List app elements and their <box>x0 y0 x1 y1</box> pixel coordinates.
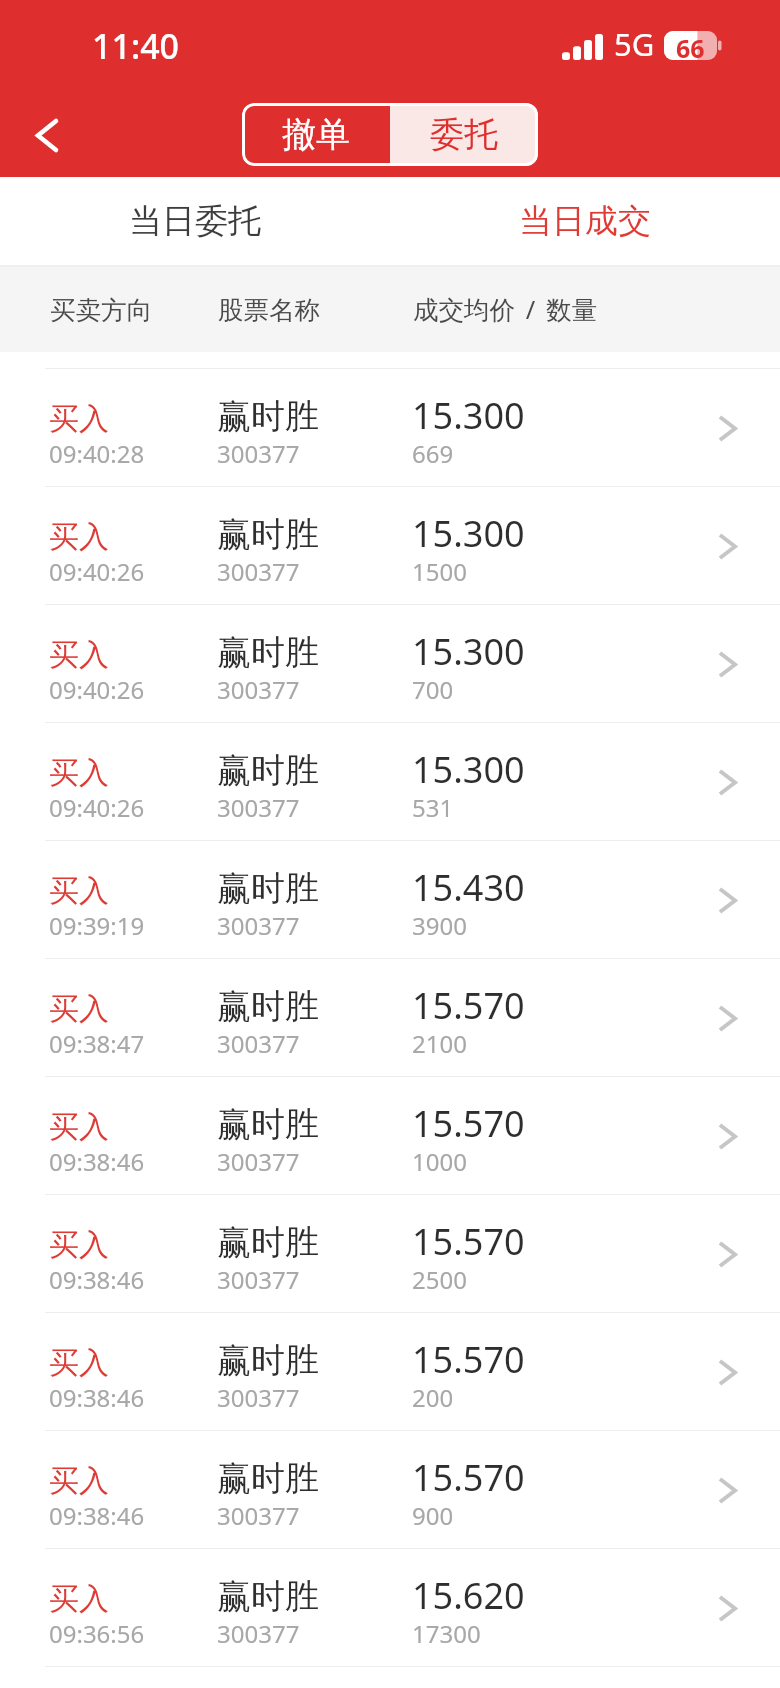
staticText: 买入 <box>49 518 109 556</box>
staticText: 赢时胜 <box>217 985 319 1028</box>
staticText: 09:39:19 <box>49 909 145 942</box>
staticText: 赢时胜 <box>217 1339 319 1382</box>
staticText: 300377 <box>217 1499 300 1532</box>
staticText: 赢时胜 <box>217 1221 319 1264</box>
staticText: 撤单 <box>282 113 350 156</box>
staticText: 3900 <box>412 909 467 942</box>
staticText: 15.570 <box>412 1099 525 1148</box>
staticText: 300377 <box>217 791 300 824</box>
staticText: 买卖方向 <box>50 294 152 326</box>
staticText: 买入 <box>49 400 109 438</box>
staticText: 赢时胜 <box>217 1575 319 1618</box>
button[interactable]: 买入 <box>0 1313 780 1431</box>
staticText: 买入 <box>49 636 109 674</box>
staticText: 赢时胜 <box>217 631 319 674</box>
staticText: 669 <box>412 437 454 470</box>
staticText: 买入 <box>49 1462 109 1500</box>
staticText: 成交均价 / 数量 <box>413 292 598 327</box>
staticText: 赢时胜 <box>217 749 319 792</box>
staticText: 赢时胜 <box>217 513 319 556</box>
staticText: 66 <box>676 31 705 60</box>
staticText: 买入 <box>49 1344 109 1382</box>
staticText: 200 <box>412 1381 454 1414</box>
staticText: 300377 <box>217 437 300 470</box>
staticText: 2500 <box>412 1263 467 1296</box>
staticText: 买入 <box>49 1580 109 1618</box>
staticText: 09:36:56 <box>49 1617 145 1650</box>
staticText: 09:40:26 <box>49 555 145 588</box>
staticText: 900 <box>412 1499 454 1532</box>
staticText: 15.570 <box>412 1453 525 1502</box>
staticText: 买入 <box>49 754 109 792</box>
staticText: 买入 <box>49 872 109 910</box>
staticText: 赢时胜 <box>217 1457 319 1500</box>
staticText: 15.570 <box>412 981 525 1030</box>
button[interactable]: 买入 <box>0 1195 780 1313</box>
staticText: 15.430 <box>412 863 525 912</box>
staticText: 15.300 <box>412 745 525 794</box>
staticText: 赢时胜 <box>217 867 319 910</box>
button[interactable]: Back <box>7 95 87 175</box>
button[interactable]: 当日委托 <box>0 177 390 265</box>
staticText: 赢时胜 <box>217 1103 319 1146</box>
staticText: 委托 <box>430 113 498 156</box>
staticText: 15.620 <box>412 1571 525 1620</box>
staticText: 300377 <box>217 1027 300 1060</box>
staticText: 300377 <box>217 1145 300 1178</box>
staticText: 2100 <box>412 1027 467 1060</box>
staticText: 当日成交 <box>519 200 651 242</box>
button[interactable]: 买入 <box>0 369 780 487</box>
staticText: 17300 <box>412 1617 481 1650</box>
button[interactable]: 买入 <box>0 1077 780 1195</box>
staticText: 买入 <box>49 990 109 1028</box>
staticText: 300377 <box>217 909 300 942</box>
staticText: 11:40 <box>92 23 180 69</box>
staticText: 15.300 <box>412 627 525 676</box>
staticText: 09:38:46 <box>49 1499 145 1532</box>
staticText: 531 <box>412 791 454 824</box>
staticText: 300377 <box>217 1381 300 1414</box>
staticText: 5G <box>614 23 655 65</box>
button[interactable]: 委托 <box>390 103 538 166</box>
button[interactable]: 当日成交 <box>390 177 780 265</box>
staticText: 09:40:26 <box>49 673 145 706</box>
button[interactable]: 买入 <box>0 959 780 1077</box>
staticText: 买入 <box>49 1108 109 1146</box>
staticText: 300377 <box>217 673 300 706</box>
staticText: 15.570 <box>412 1217 525 1266</box>
button[interactable]: 买入 <box>0 1549 780 1667</box>
staticText: 300377 <box>217 555 300 588</box>
staticText: 1500 <box>412 555 467 588</box>
staticText: 15.300 <box>412 391 525 440</box>
staticText: 09:38:46 <box>49 1263 145 1296</box>
button[interactable]: 买入 <box>0 605 780 723</box>
staticText: 09:40:26 <box>49 791 145 824</box>
button[interactable]: 买入 <box>0 841 780 959</box>
staticText: 09:38:47 <box>49 1027 145 1060</box>
staticText: 09:38:46 <box>49 1381 145 1414</box>
staticText: 15.570 <box>412 1335 525 1384</box>
staticText: 赢时胜 <box>217 395 319 438</box>
staticText: 当日委托 <box>129 200 261 242</box>
button[interactable]: 买入 <box>0 723 780 841</box>
staticText: 300377 <box>217 1617 300 1650</box>
staticText: 股票名称 <box>218 294 320 326</box>
staticText: 1000 <box>412 1145 467 1178</box>
staticText: 700 <box>412 673 454 706</box>
button[interactable]: 买入 <box>0 1431 780 1549</box>
staticText: 买入 <box>49 1226 109 1264</box>
button[interactable]: 买入 <box>0 487 780 605</box>
staticText: 09:38:46 <box>49 1145 145 1178</box>
staticText: 09:40:28 <box>49 437 145 470</box>
staticText: 15.300 <box>412 509 525 558</box>
button[interactable]: 撤单 <box>242 103 390 166</box>
staticText: 300377 <box>217 1263 300 1296</box>
